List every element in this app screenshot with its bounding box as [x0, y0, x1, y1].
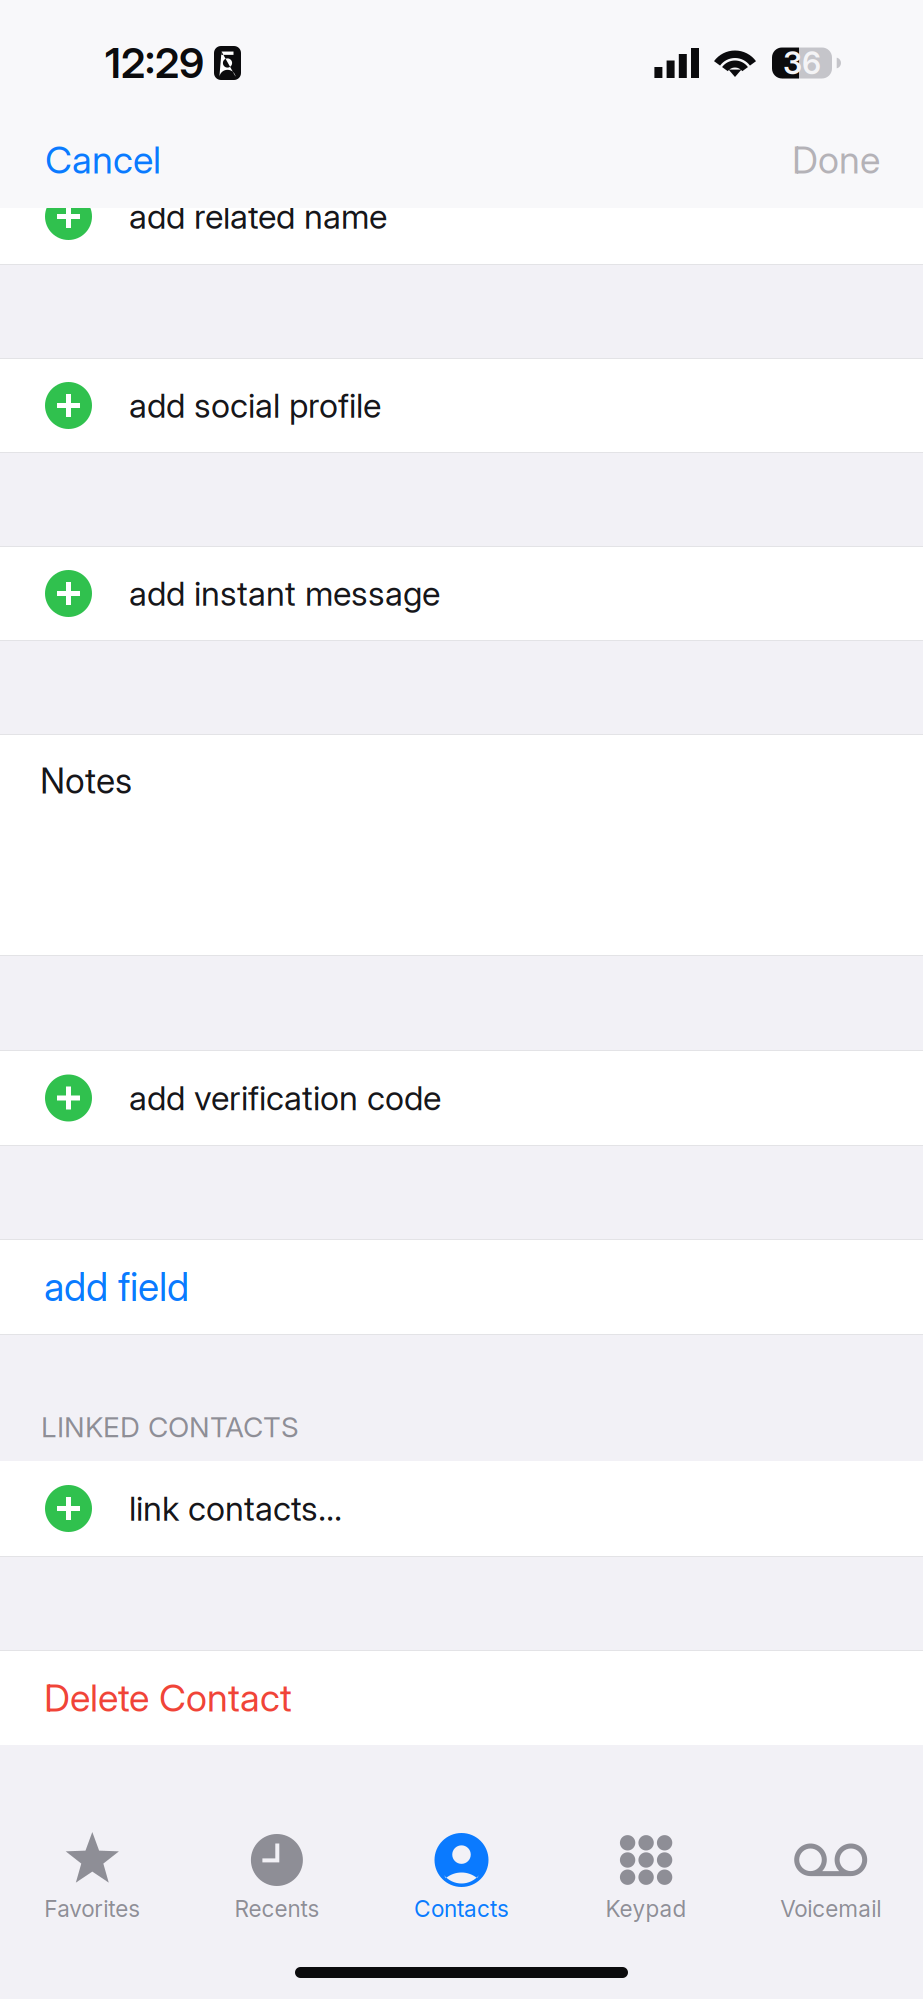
staticText: add social profile	[129, 385, 381, 426]
staticText: link contacts...	[129, 1488, 342, 1529]
staticText: LINKED CONTACTS	[41, 1410, 299, 1444]
staticText: Delete Contact	[44, 1675, 292, 1721]
staticText: Favorites	[44, 1895, 140, 1922]
staticText: Voicemail	[780, 1895, 881, 1922]
staticText: 12:29	[105, 38, 204, 88]
button[interactable]: Recents	[185, 1819, 369, 1939]
staticText: add related name	[129, 196, 387, 237]
button[interactable]: add verification code	[0, 1051, 923, 1145]
staticText: add verification code	[129, 1078, 441, 1118]
button[interactable]: add instant message	[0, 547, 923, 640]
button[interactable]: Contacts	[369, 1819, 554, 1939]
button[interactable]: add field	[0, 1240, 923, 1334]
staticText: Cancel	[45, 137, 161, 183]
button[interactable]: link contacts...	[0, 1461, 923, 1556]
button[interactable]: Voicemail	[738, 1819, 923, 1939]
button[interactable]: add social profile	[0, 359, 923, 452]
staticText: Contacts	[414, 1895, 509, 1922]
staticText: add field	[44, 1264, 189, 1310]
staticText: 36	[783, 44, 821, 81]
button[interactable]: Cancel	[0, 119, 185, 201]
button[interactable]: Delete Contact	[0, 1651, 923, 1745]
staticText: Notes	[40, 760, 132, 802]
button[interactable]: Keypad	[554, 1819, 738, 1939]
button[interactable]: add related name	[0, 208, 923, 264]
button[interactable]: Notes	[0, 735, 923, 955]
button[interactable]: Done	[768, 119, 923, 201]
staticText: Done	[792, 137, 880, 183]
button[interactable]: Favorites	[0, 1819, 185, 1939]
staticText: Keypad	[606, 1895, 687, 1922]
staticText: Recents	[234, 1895, 319, 1922]
staticText: add instant message	[129, 573, 440, 614]
